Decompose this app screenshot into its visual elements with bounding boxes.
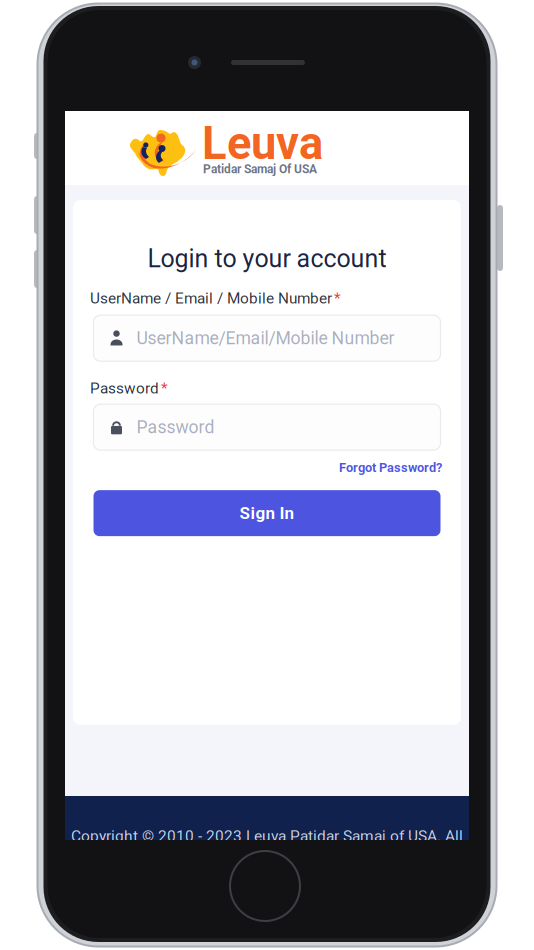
staticText: Copyright © 2010 - 2023 Leuva Patidar Sa…: [71, 827, 463, 845]
staticText: Password: [136, 417, 214, 437]
button[interactable]: Password: [93, 404, 440, 450]
staticText: UserName/Email/Mobile Number: [136, 328, 394, 348]
staticText: Password: [90, 379, 159, 397]
staticText: *: [161, 379, 168, 397]
staticText: Leuva: [202, 117, 323, 170]
staticText: Patidar Samaj Of USA: [203, 162, 317, 176]
button[interactable]: UserName/Email/Mobile Number: [93, 315, 440, 361]
staticText: UserName / Email / Mobile Number: [90, 289, 332, 307]
staticText: Login to your account: [147, 244, 386, 273]
button[interactable]: Sign In: [90, 490, 444, 536]
button[interactable]: Forgot Password?: [90, 450, 444, 490]
staticText: Sign In: [239, 503, 294, 523]
staticText: *: [334, 289, 341, 307]
staticText: Forgot Password?: [339, 460, 442, 475]
